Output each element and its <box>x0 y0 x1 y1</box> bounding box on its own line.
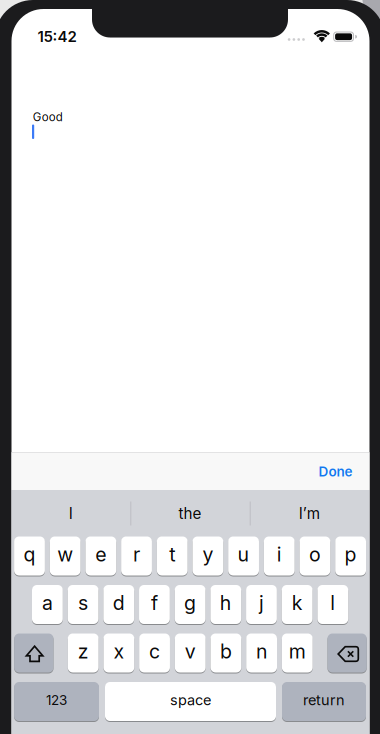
staticText: k <box>292 591 303 615</box>
button[interactable]: Shift <box>14 632 53 673</box>
button[interactable]: x <box>103 632 134 673</box>
staticText: y <box>202 543 213 566</box>
button[interactable]: z <box>68 632 99 673</box>
staticText: c <box>149 640 160 663</box>
button[interactable]: k <box>282 584 313 625</box>
staticText: l <box>330 591 335 615</box>
button[interactable]: m <box>282 632 313 673</box>
staticText: b <box>220 640 232 663</box>
staticText: I <box>69 504 73 523</box>
button[interactable]: l <box>317 584 348 625</box>
staticText: w <box>57 543 73 566</box>
staticText: return <box>303 691 345 709</box>
staticText: q <box>23 543 35 566</box>
button[interactable]: g <box>175 584 205 625</box>
button[interactable]: t <box>157 535 188 576</box>
button[interactable]: d <box>103 584 134 625</box>
button[interactable]: p <box>335 535 366 576</box>
button[interactable]: v <box>175 632 206 673</box>
staticText: u <box>238 543 250 566</box>
button[interactable]: w <box>50 535 81 576</box>
staticText: x <box>113 640 124 663</box>
button[interactable]: i <box>264 535 295 576</box>
button[interactable]: o <box>299 535 330 576</box>
staticText: h <box>220 591 232 615</box>
staticText: 123 <box>46 692 67 708</box>
staticText: 15:42 <box>37 27 76 45</box>
staticText: p <box>345 543 357 566</box>
staticText: v <box>185 640 196 663</box>
button[interactable]: y <box>192 535 223 576</box>
staticText: n <box>256 640 267 663</box>
staticText: e <box>95 543 106 566</box>
button[interactable]: j <box>246 584 277 625</box>
button[interactable]: the <box>131 493 249 533</box>
staticText: the <box>178 504 201 523</box>
button[interactable]: Delete <box>327 632 367 673</box>
button[interactable]: n <box>246 632 277 673</box>
staticText: g <box>184 591 196 615</box>
button[interactable]: f <box>139 584 170 625</box>
button[interactable]: I’m <box>250 493 368 533</box>
staticText: Done <box>318 463 352 480</box>
button[interactable]: r <box>121 535 152 576</box>
button[interactable]: I <box>12 493 130 533</box>
button[interactable]: u <box>228 535 259 576</box>
button[interactable]: return <box>282 681 366 722</box>
staticText: I’m <box>299 504 320 523</box>
staticText: z <box>78 640 89 663</box>
staticText: a <box>42 591 53 615</box>
button[interactable]: h <box>210 584 241 625</box>
staticText: j <box>259 591 264 615</box>
button[interactable]: 123 <box>14 681 99 722</box>
button[interactable]: s <box>68 584 98 625</box>
staticText: s <box>78 591 88 615</box>
staticText: space <box>170 691 211 709</box>
button[interactable]: c <box>139 632 170 673</box>
staticText: t <box>169 543 175 566</box>
button[interactable]: Done <box>307 453 363 490</box>
staticText: i <box>277 543 282 566</box>
staticText: f <box>151 591 158 615</box>
staticText: r <box>133 543 140 566</box>
button[interactable]: b <box>210 632 241 673</box>
button[interactable]: e <box>85 535 116 576</box>
staticText: Good <box>33 110 63 124</box>
button[interactable]: space <box>105 681 276 722</box>
staticText: m <box>289 640 306 663</box>
staticText: d <box>113 591 125 615</box>
staticText: o <box>309 543 321 566</box>
button[interactable]: q <box>14 535 45 576</box>
button[interactable]: a <box>32 584 63 625</box>
